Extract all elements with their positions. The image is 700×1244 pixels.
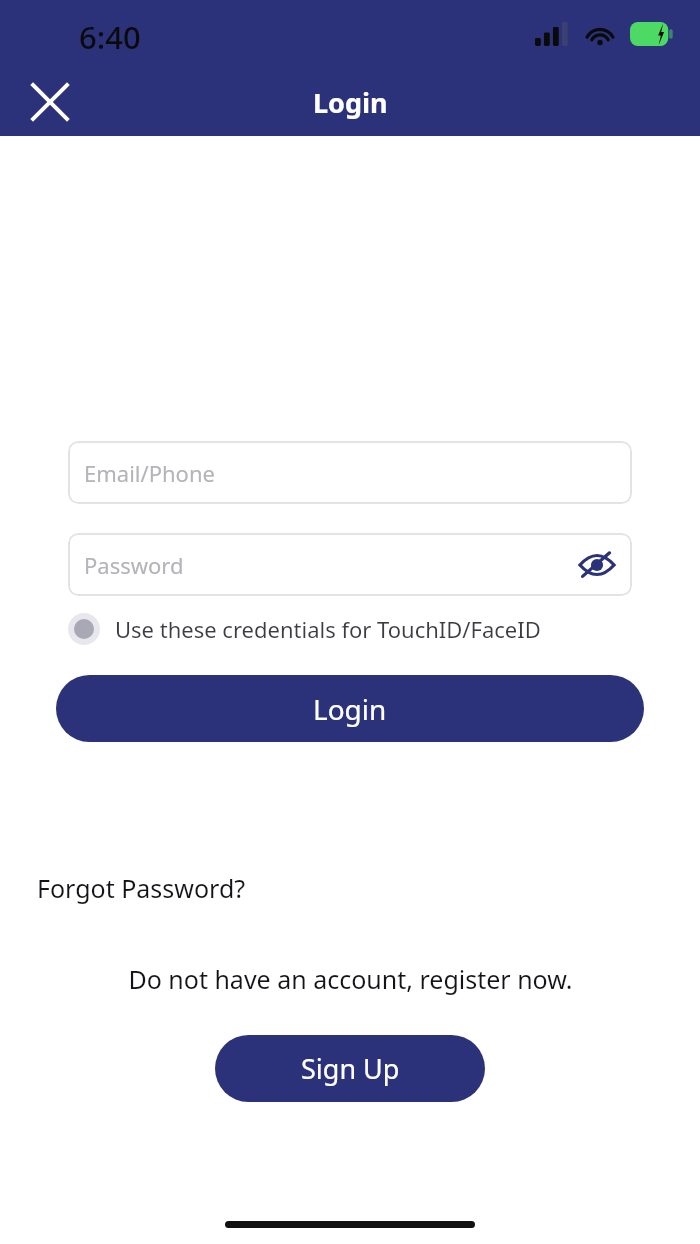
button[interactable]: Forgot Password? — [24, 864, 259, 912]
button[interactable]: Email/Phone — [68, 441, 632, 504]
staticText: Email/Phone — [84, 458, 215, 488]
button[interactable]: Show password — [572, 540, 622, 590]
staticText: Do not have an account, register now. — [128, 962, 573, 996]
button[interactable]: Password — [68, 533, 632, 596]
button[interactable]: Close — [18, 70, 82, 134]
button[interactable]: Login — [56, 675, 644, 742]
button[interactable]: Use these credentials for TouchID/FaceID — [60, 606, 549, 652]
staticText: Sign Up — [301, 1050, 400, 1087]
staticText: Use these credentials for TouchID/FaceID — [115, 614, 541, 644]
staticText: Password — [84, 550, 184, 580]
staticText: Login — [313, 84, 388, 121]
staticText: Login — [313, 690, 387, 728]
staticText: Forgot Password? — [37, 871, 246, 905]
staticText: 6:40 — [79, 16, 141, 58]
button[interactable]: Sign Up — [215, 1035, 485, 1102]
